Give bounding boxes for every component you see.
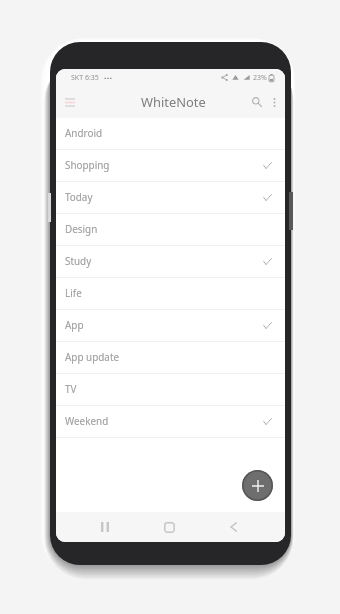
- staticText: SKT 6:35: [71, 73, 99, 83]
- staticText: App: [65, 318, 84, 331]
- button[interactable]: Recents: [93, 515, 117, 539]
- staticText: TV: [65, 382, 77, 395]
- staticText: Design: [65, 222, 98, 235]
- staticText: Study: [65, 254, 92, 267]
- button[interactable]: App: [56, 310, 285, 342]
- button[interactable]: More options: [266, 94, 282, 110]
- staticText: 23%: [253, 73, 267, 83]
- button[interactable]: Add note: [242, 470, 273, 501]
- staticText: Today: [65, 190, 93, 203]
- staticText: Weekend: [65, 414, 109, 427]
- button[interactable]: Today: [56, 182, 285, 214]
- button[interactable]: Android: [56, 118, 285, 150]
- staticText: Life: [65, 286, 82, 299]
- button[interactable]: Search: [248, 93, 266, 111]
- button[interactable]: Menu: [60, 92, 80, 112]
- button[interactable]: TV: [56, 374, 285, 406]
- staticText: Shopping: [65, 158, 110, 171]
- button[interactable]: Weekend: [56, 406, 285, 438]
- button[interactable]: App update: [56, 342, 285, 374]
- button[interactable]: Shopping: [56, 150, 285, 182]
- button[interactable]: Life: [56, 278, 285, 310]
- staticText: App update: [65, 350, 120, 363]
- staticText: Android: [65, 126, 103, 139]
- button[interactable]: Back: [221, 515, 245, 539]
- button[interactable]: Home: [157, 515, 181, 539]
- staticText: WhiteNote: [141, 93, 206, 111]
- button[interactable]: Design: [56, 214, 285, 246]
- button[interactable]: Study: [56, 246, 285, 278]
